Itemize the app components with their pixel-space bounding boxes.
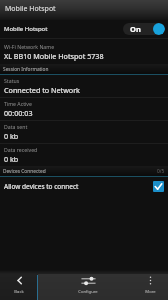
staticText: Mobile Hotspot (5, 4, 56, 14)
other: Configure (81, 276, 96, 286)
button[interactable]: Back (0, 270, 38, 300)
button[interactable]: Mobile Hotspot (0, 20, 168, 38)
button[interactable]: Time Active (0, 98, 168, 120)
other: Back (15, 276, 24, 285)
staticText: 0/5 (157, 168, 165, 175)
staticText: Wi-Fi Network Name (4, 43, 55, 50)
staticText: Data sent (4, 123, 28, 130)
staticText: On (130, 24, 141, 34)
button[interactable]: Allow devices to connect (0, 177, 168, 195)
other: More (146, 276, 155, 285)
staticText: XL BB10 Mobile Hotspot 5738 (4, 51, 104, 61)
button[interactable]: Data sent (0, 121, 168, 143)
staticText: Session Information (3, 66, 49, 73)
staticText: Time Active (4, 100, 32, 107)
button[interactable]: Configure (38, 270, 138, 300)
staticText: Connected to Network (4, 85, 80, 95)
staticText: More (145, 289, 156, 295)
button[interactable]: Wi-Fi Network Name (0, 39, 168, 64)
button[interactable]: Mobile Hotspot toggle (123, 23, 165, 35)
button[interactable]: Allow devices to connect (153, 181, 164, 192)
staticText: 0 kb (4, 131, 19, 141)
staticText: Devices Connected (3, 168, 46, 175)
staticText: 0 kb (4, 154, 19, 164)
staticText: Configure (78, 289, 98, 295)
staticText: 00:00:03 (4, 108, 33, 118)
staticText: Allow devices to connect (4, 182, 79, 191)
button[interactable]: Data received (0, 144, 168, 166)
button[interactable]: Status (0, 75, 168, 97)
staticText: Status (4, 77, 20, 84)
button[interactable]: More (138, 270, 163, 300)
staticText: Back (14, 289, 24, 295)
staticText: Mobile Hotspot (4, 25, 48, 33)
staticText: Data received (4, 146, 38, 153)
